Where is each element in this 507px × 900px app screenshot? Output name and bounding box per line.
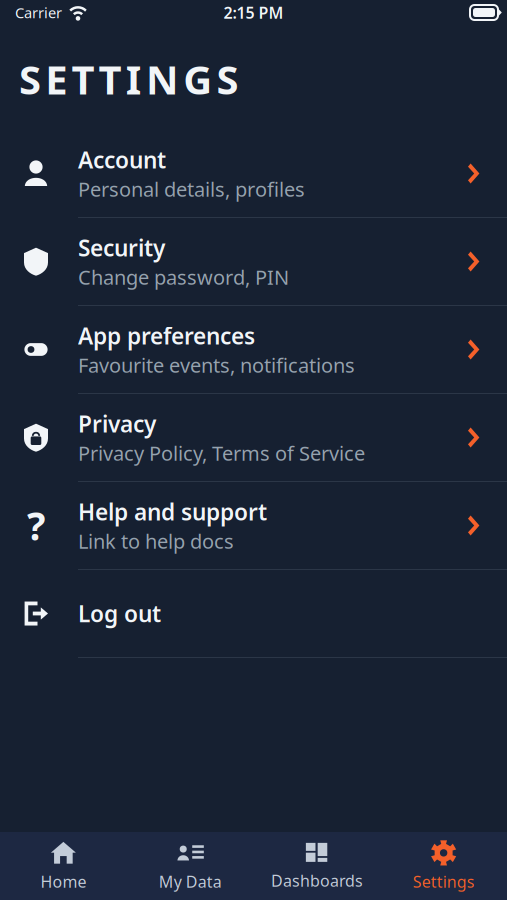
staticText: Log out (78, 598, 161, 628)
button[interactable]: App preferences (0, 306, 507, 394)
staticText: I (126, 52, 142, 105)
button[interactable]: Dashboards (253, 832, 380, 900)
staticText: 2:15 PM (223, 2, 283, 23)
staticText: N (146, 52, 179, 105)
staticText: My Data (159, 871, 222, 892)
staticText: Account (78, 145, 166, 175)
staticText: Favourite events, notifications (78, 352, 355, 378)
staticText: Settings (413, 871, 475, 892)
button[interactable]: ? (0, 482, 507, 570)
staticText: Home (40, 871, 86, 892)
staticText: S (19, 52, 41, 105)
staticText: Change password, PIN (78, 264, 289, 290)
staticText: Privacy Policy, Terms of Service (78, 440, 365, 466)
staticText: S (216, 52, 238, 105)
button[interactable]: Security (0, 218, 507, 306)
staticText: App preferences (78, 321, 255, 351)
staticText: Privacy (78, 409, 156, 439)
staticText: Security (78, 233, 165, 263)
staticText: Dashboards (271, 870, 363, 891)
button[interactable]: Log out (0, 570, 507, 658)
staticText: ? (27, 500, 45, 551)
staticText: Carrier (15, 3, 62, 22)
button[interactable]: Home (0, 832, 127, 900)
staticText: E (45, 52, 67, 105)
staticText: T (99, 52, 122, 105)
button[interactable]: Settings (380, 832, 507, 900)
staticText: Personal details, profiles (78, 176, 305, 202)
staticText: G (183, 52, 212, 105)
staticText: Help and support (78, 497, 267, 527)
staticText: Link to help docs (78, 528, 234, 554)
staticText: T (71, 52, 94, 105)
button[interactable]: Privacy (0, 394, 507, 482)
button[interactable]: My Data (127, 832, 254, 900)
button[interactable]: Account (0, 130, 507, 218)
